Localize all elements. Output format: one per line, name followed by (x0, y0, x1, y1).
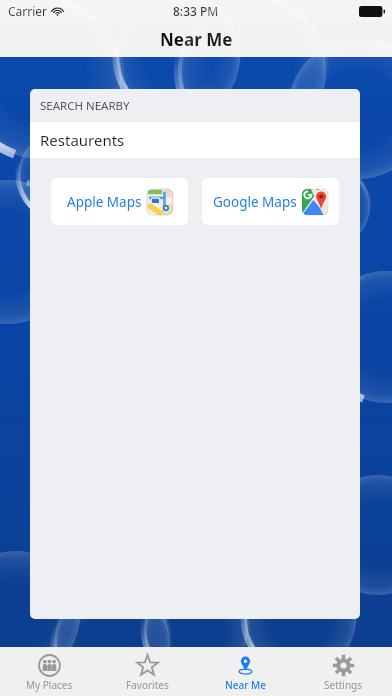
button[interactable]: Restaurents (30, 122, 360, 158)
button[interactable]: Settings (294, 647, 392, 696)
other: My Places (38, 654, 61, 677)
staticText: Carrier (8, 3, 48, 19)
staticText: Near Me (225, 678, 266, 692)
staticText: SEARCH NEARBY (40, 98, 130, 114)
button[interactable]: My Places (0, 647, 98, 696)
staticText: 8:33 PM (173, 3, 219, 19)
button[interactable]: Favorites (98, 647, 196, 696)
staticText: Restaurents (40, 130, 125, 150)
staticText: My Places (26, 678, 73, 692)
staticText: Google Maps (213, 193, 297, 211)
other: Near Me (234, 654, 257, 677)
button[interactable]: Google Maps (202, 178, 339, 225)
button[interactable]: Apple Maps (51, 178, 188, 225)
button[interactable]: Near Me (196, 647, 294, 696)
staticText: Settings (324, 678, 363, 692)
staticText: Apple Maps (67, 193, 142, 211)
other: Favorites (136, 654, 159, 677)
other: Settings (332, 654, 355, 677)
staticText: Favorites (126, 678, 169, 692)
staticText: Near Me (160, 28, 233, 51)
